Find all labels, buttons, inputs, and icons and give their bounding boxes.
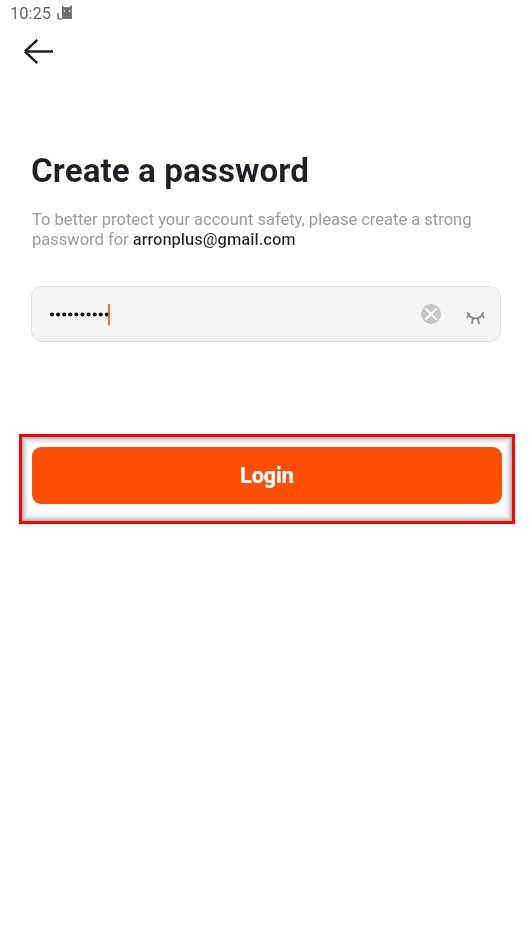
staticText: Login (240, 463, 294, 488)
staticText: 10:25 (10, 4, 52, 23)
staticText: To better protect your account safety, p… (32, 210, 482, 249)
button[interactable]: Back (15, 28, 62, 75)
button[interactable]: Clear text (411, 294, 451, 334)
staticText: Create a password (31, 151, 309, 190)
button[interactable]: Show password (455, 294, 495, 334)
button[interactable]: Login (32, 447, 502, 504)
